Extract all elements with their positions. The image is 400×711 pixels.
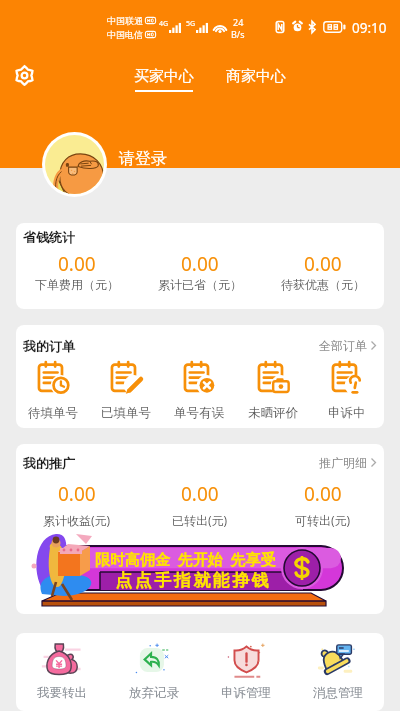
staticText: 4G	[159, 19, 169, 29]
button[interactable]: 请登录	[119, 155, 167, 175]
button[interactable]: 未晒评价	[236, 359, 310, 421]
staticText: 累计收益(元)	[43, 512, 111, 528]
staticText: 已转出(元)	[172, 512, 228, 528]
staticText: 申诉中	[328, 405, 366, 421]
staticText: 下单费用（元）	[35, 277, 119, 292]
staticText: 限时高佣金 先开始 先享受	[95, 549, 276, 569]
button[interactable]: 放弃记录	[108, 638, 200, 701]
button[interactable]: 申诉中	[310, 359, 384, 421]
button[interactable]: 单号有误	[162, 359, 236, 421]
button[interactable]: 限时高佣金 先开始 先享受	[16, 533, 384, 606]
staticText: 已填单号	[101, 405, 151, 421]
staticText: 0.00	[181, 251, 219, 277]
button[interactable]: 全部订单	[319, 338, 376, 353]
button[interactable]: 申诉管理	[200, 638, 292, 701]
staticText: 未晒评价	[248, 405, 298, 421]
button[interactable]: Settings	[8, 59, 41, 92]
staticText: 请登录	[119, 149, 167, 169]
staticText: 全部订单	[319, 338, 367, 353]
staticText: 累计已省（元）	[158, 277, 242, 292]
staticText: 推广明细	[319, 455, 367, 470]
staticText: 省钱统计	[23, 229, 75, 245]
staticText: 点点手指就能挣钱	[114, 570, 270, 591]
button[interactable]: 买家中心	[130, 67, 198, 92]
staticText: 我的推广	[23, 455, 75, 471]
staticText: 0.00	[304, 251, 342, 277]
staticText: 待填单号	[28, 405, 78, 421]
button[interactable]: 商家中心	[222, 67, 290, 86]
staticText: 待获优惠（元）	[281, 277, 365, 292]
staticText: 0.00	[304, 481, 342, 507]
staticText: 单号有误	[174, 405, 224, 421]
staticText: 消息管理	[313, 685, 363, 701]
staticText: 中国电信	[107, 29, 143, 40]
staticText: 我要转出	[37, 685, 87, 701]
staticText: 商家中心	[226, 67, 286, 86]
staticText: 24	[233, 16, 244, 28]
staticText: 0.00	[58, 481, 96, 507]
staticText: 申诉管理	[221, 685, 271, 701]
button[interactable]: 推广明细	[319, 455, 376, 470]
button[interactable]: 我要转出	[16, 638, 108, 701]
staticText: B/s	[231, 28, 245, 40]
staticText: 放弃记录	[129, 685, 179, 701]
button[interactable]: 已填单号	[89, 359, 162, 421]
staticText: 我的订单	[23, 338, 75, 354]
staticText: 可转出(元)	[295, 512, 351, 528]
staticText: 中国联通	[107, 15, 143, 26]
button[interactable]: 待填单号	[16, 359, 89, 421]
staticText: 0.00	[181, 481, 219, 507]
button[interactable]: Avatar	[45, 135, 104, 194]
staticText: 买家中心	[134, 67, 194, 86]
button[interactable]: 消息管理	[292, 638, 384, 701]
staticText: 0.00	[58, 251, 96, 277]
staticText: 5G	[186, 19, 196, 29]
staticText: 09:10	[352, 19, 387, 37]
